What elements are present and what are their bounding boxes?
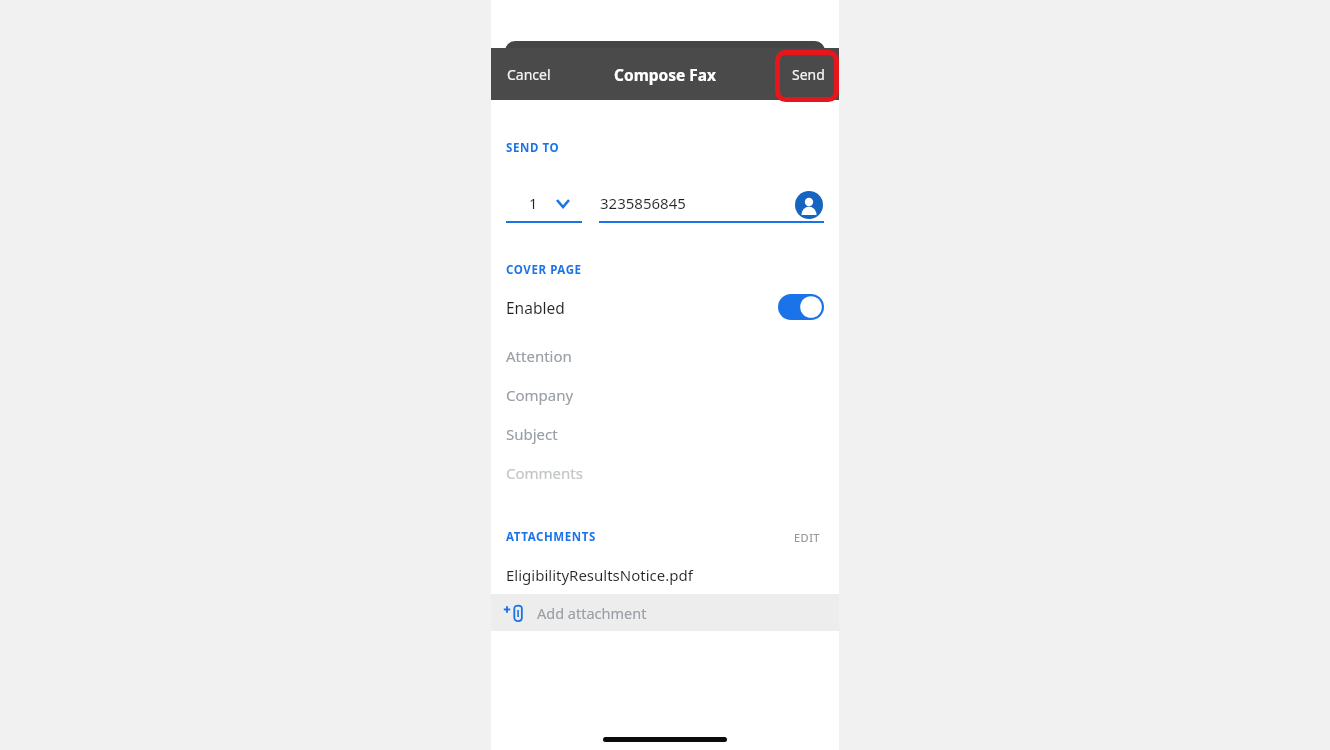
staticText: 3235856845 bbox=[600, 193, 686, 213]
button[interactable]: 3235856845 bbox=[599, 188, 824, 222]
staticText: Attention bbox=[506, 346, 572, 366]
staticText: EligibilityResultsNotice.pdf bbox=[506, 565, 693, 585]
button[interactable]: Company bbox=[491, 377, 839, 413]
button[interactable]: EDIT bbox=[788, 525, 826, 550]
button[interactable]: Send bbox=[784, 59, 833, 90]
other: Cover page enabled bbox=[778, 294, 824, 320]
staticText: Subject bbox=[506, 424, 558, 444]
staticText: Add attachment bbox=[537, 603, 647, 623]
staticText: EDIT bbox=[794, 530, 820, 545]
button[interactable]: Enabled bbox=[491, 288, 839, 326]
button[interactable]: Attention bbox=[491, 338, 839, 374]
staticText: ATTACHMENTS bbox=[506, 529, 596, 545]
staticText: 1 bbox=[529, 193, 538, 213]
staticText: Cancel bbox=[507, 65, 551, 84]
button[interactable]: Subject bbox=[491, 416, 839, 452]
button[interactable]: Choose contact bbox=[795, 191, 823, 219]
staticText: Compose Fax bbox=[614, 64, 717, 85]
staticText: Send bbox=[792, 65, 825, 84]
staticText: Enabled bbox=[506, 297, 565, 318]
staticText: Company bbox=[506, 385, 574, 405]
button[interactable]: Add attachment bbox=[491, 594, 839, 631]
button[interactable]: Cancel bbox=[499, 59, 559, 90]
button[interactable]: 1 bbox=[506, 188, 582, 222]
staticText: Comments bbox=[506, 463, 583, 483]
button[interactable]: EligibilityResultsNotice.pdf bbox=[491, 558, 839, 592]
button[interactable]: Comments bbox=[491, 455, 839, 491]
staticText: SEND TO bbox=[506, 140, 560, 156]
other: Select country code bbox=[556, 199, 570, 208]
staticText: COVER PAGE bbox=[506, 262, 582, 278]
